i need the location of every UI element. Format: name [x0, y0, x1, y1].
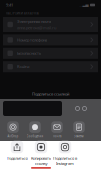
button[interactable]: Электронная почта — [3, 17, 98, 32]
button[interactable]: Копировать — [29, 133, 53, 169]
button[interactable]: Закрыть — [81, 105, 88, 112]
button[interactable]: Почта — [46, 121, 68, 138]
staticText: ссылку — [34, 161, 47, 166]
button[interactable]: Поделиться в — [53, 133, 77, 169]
staticText: Копировать — [31, 155, 51, 161]
staticText: ▁▃▅ — [80, 3, 89, 7]
staticText: Электронная почта — [17, 19, 51, 24]
staticText: Поделиться в — [53, 155, 77, 161]
staticText: Сообщения — [26, 134, 43, 138]
staticText: НАСТРОЙКИ АККАУНТА — [6, 12, 39, 15]
button[interactable]: Параметры — [74, 105, 81, 112]
button[interactable]: Сообщения — [24, 121, 46, 138]
button[interactable]: AirDrop — [2, 121, 24, 138]
button[interactable]: Номер телефона — [3, 34, 98, 45]
staticText: Заметки — [74, 134, 84, 138]
button[interactable]: Безопасность — [3, 48, 98, 59]
staticText: Поделиться — [6, 155, 27, 161]
staticText: Безопасность — [17, 51, 41, 56]
staticText: Почта — [53, 134, 61, 138]
button[interactable]: Выйти — [3, 61, 98, 72]
staticText: AirDrop — [7, 134, 18, 138]
button[interactable]: Поделиться — [5, 133, 29, 169]
staticText: 9:41 — [6, 2, 13, 8]
staticText: Номер телефона — [17, 37, 47, 42]
staticText: Выйти — [17, 64, 29, 69]
staticText: Поделиться ссылкой — [32, 91, 69, 96]
staticText: anna.petrova@mail.ru — [17, 25, 56, 30]
staticText: Instagram — [56, 161, 74, 166]
button[interactable]: Заметки — [68, 121, 90, 138]
